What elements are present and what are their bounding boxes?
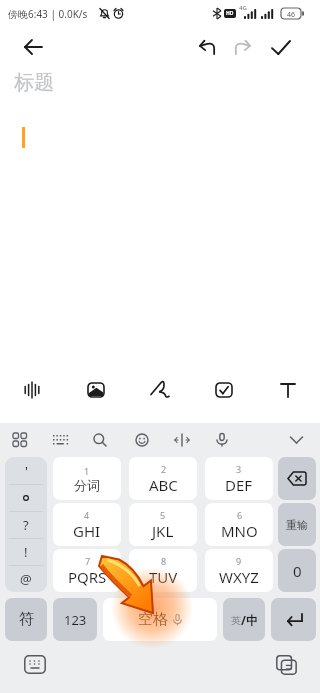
staticText: 1 xyxy=(84,465,90,477)
staticText: 8 xyxy=(161,555,167,567)
staticText: WXYZ xyxy=(219,567,259,587)
staticText: 傍晚6:43 | 0.0K/s xyxy=(8,7,88,21)
button[interactable] xyxy=(192,365,256,415)
button[interactable]: ? xyxy=(5,512,47,538)
staticText: 英 xyxy=(231,614,241,627)
staticText: PQRS xyxy=(68,567,107,587)
staticText: DEF xyxy=(225,475,253,495)
button[interactable] xyxy=(128,365,192,415)
button[interactable] xyxy=(208,426,236,454)
staticText: 9 xyxy=(236,555,242,567)
button[interactable]: 123 xyxy=(53,598,97,641)
button[interactable]: 重输 xyxy=(278,503,316,546)
staticText: @ xyxy=(20,570,32,588)
staticText: 符 xyxy=(19,610,34,629)
staticText: 空格 xyxy=(138,610,168,629)
button[interactable]: 9 xyxy=(205,549,273,592)
button[interactable] xyxy=(5,485,47,511)
staticText: 0 xyxy=(293,561,302,581)
button[interactable]: 8 xyxy=(129,549,197,592)
button[interactable]: 2 xyxy=(129,457,197,500)
staticText: 7 xyxy=(85,555,91,567)
staticText: ABC xyxy=(149,475,178,495)
button[interactable] xyxy=(24,655,46,674)
button[interactable]: 符 xyxy=(5,598,47,641)
button[interactable]: 1 xyxy=(53,457,121,500)
staticText: GHI xyxy=(73,521,101,541)
staticText: ? xyxy=(23,516,29,534)
button[interactable] xyxy=(86,426,114,454)
button[interactable] xyxy=(227,31,259,63)
button[interactable]: 3 xyxy=(205,457,273,500)
staticText: 5 xyxy=(160,509,166,521)
staticText: 46 xyxy=(287,10,296,20)
staticText: 123 xyxy=(64,611,87,629)
staticText: 6 xyxy=(237,509,243,521)
staticText: 3 xyxy=(236,463,242,475)
button[interactable] xyxy=(256,365,320,415)
button[interactable] xyxy=(17,31,49,63)
staticText: ' xyxy=(25,462,28,480)
button[interactable] xyxy=(46,426,74,454)
button[interactable]: 0 xyxy=(278,549,316,592)
staticText: HD xyxy=(226,10,234,17)
button[interactable] xyxy=(278,457,316,500)
button[interactable]: 5 xyxy=(129,503,197,546)
staticText: MNO xyxy=(221,521,258,541)
staticText: 分词 xyxy=(74,477,100,493)
staticText: ! xyxy=(24,543,28,561)
staticText: 重输 xyxy=(286,518,308,532)
button[interactable] xyxy=(276,655,297,675)
button[interactable]: ' xyxy=(5,457,47,484)
button[interactable]: 空格 xyxy=(103,598,217,641)
button[interactable]: 6 xyxy=(205,503,273,546)
button[interactable]: 7 xyxy=(53,549,121,592)
staticText: 4G xyxy=(239,4,247,12)
button[interactable]: 4 xyxy=(53,503,121,546)
button[interactable] xyxy=(190,31,222,63)
button[interactable] xyxy=(64,365,128,415)
staticText: TUV xyxy=(149,567,178,587)
button[interactable] xyxy=(271,598,316,641)
staticText: 2 xyxy=(161,463,167,475)
staticText: JKL xyxy=(152,521,174,541)
button[interactable] xyxy=(6,426,34,454)
button[interactable] xyxy=(265,31,297,63)
staticText: 4 xyxy=(84,509,90,521)
staticText: 标题 xyxy=(14,70,54,95)
button[interactable]: ! xyxy=(5,539,47,565)
button[interactable] xyxy=(128,426,156,454)
button[interactable]: @ xyxy=(5,566,47,592)
staticText: /中 xyxy=(241,612,258,628)
button[interactable] xyxy=(168,426,196,454)
button[interactable] xyxy=(282,426,310,454)
button[interactable]: 英 xyxy=(223,598,265,641)
button[interactable] xyxy=(0,365,64,415)
